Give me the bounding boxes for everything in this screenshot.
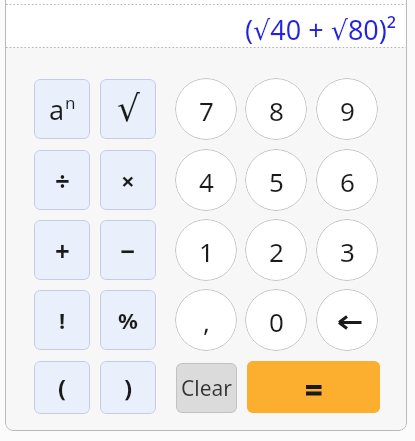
button[interactable]: 8: [245, 78, 307, 140]
staticText: ×: [121, 164, 135, 197]
staticText: 1: [199, 234, 214, 269]
staticText: (: [58, 371, 67, 404]
button[interactable]: +: [34, 220, 90, 280]
button[interactable]: (: [34, 361, 90, 414]
staticText: 6: [340, 164, 355, 199]
staticText: +: [55, 233, 70, 268]
staticText: 5: [269, 164, 284, 199]
button[interactable]: 3: [316, 219, 378, 281]
button[interactable]: 5: [245, 149, 307, 211]
staticText: √: [117, 88, 140, 130]
button[interactable]: Clear: [176, 363, 237, 413]
staticText: 7: [199, 93, 214, 128]
staticText: n: [65, 91, 76, 114]
button[interactable]: ,: [175, 289, 237, 351]
button[interactable]: ×: [100, 150, 156, 210]
button[interactable]: 0: [245, 289, 307, 351]
button[interactable]: ): [100, 361, 156, 414]
staticText: a: [49, 91, 65, 128]
button[interactable]: a: [34, 79, 90, 139]
button[interactable]: %: [100, 290, 156, 350]
staticText: 0: [269, 304, 284, 339]
staticText: (√40 + √80)²: [245, 11, 397, 48]
button[interactable]: 2: [245, 219, 307, 281]
button[interactable]: (√40 + √80)²: [0, 7, 397, 51]
staticText: 3: [340, 234, 355, 269]
button[interactable]: √: [100, 79, 156, 139]
staticText: 8: [269, 93, 284, 128]
staticText: ): [124, 371, 133, 404]
staticText: ,: [203, 304, 210, 339]
staticText: !: [59, 305, 66, 335]
staticText: 4: [199, 164, 214, 199]
staticText: ÷: [55, 163, 70, 198]
button[interactable]: 1: [175, 219, 237, 281]
button[interactable]: !: [34, 290, 90, 350]
staticText: %: [118, 305, 138, 335]
button[interactable]: 7: [175, 78, 237, 140]
staticText: −: [120, 233, 136, 268]
button[interactable]: [247, 361, 380, 413]
button[interactable]: 9: [316, 78, 378, 140]
staticText: 2: [269, 234, 284, 269]
staticText: 9: [340, 93, 355, 128]
button[interactable]: 6: [316, 149, 378, 211]
button[interactable]: [316, 289, 378, 351]
staticText: Clear: [181, 374, 232, 403]
button[interactable]: ÷: [34, 150, 90, 210]
button[interactable]: −: [100, 220, 156, 280]
button[interactable]: 4: [175, 149, 237, 211]
